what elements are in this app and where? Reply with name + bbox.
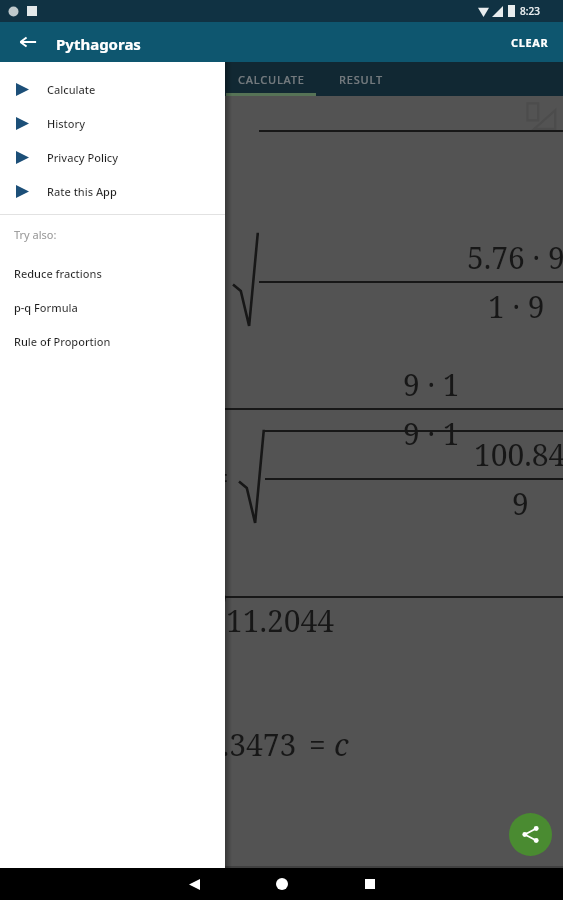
staticText: = <box>212 457 229 498</box>
staticText: Calculate <box>47 82 96 97</box>
staticText: 9 <box>512 483 529 524</box>
staticText: 11.2044 <box>226 600 335 641</box>
staticText: Privacy Policy <box>47 150 119 165</box>
button[interactable]: RESULT <box>316 62 406 96</box>
button[interactable]: CALCULATE <box>226 62 316 96</box>
staticText: p-q Formula <box>14 300 78 315</box>
staticText: Rate this App <box>47 184 117 199</box>
button[interactable]: History <box>0 106 225 140</box>
staticText: 9 · 1 <box>403 413 460 454</box>
staticText: 8:23 <box>520 4 540 18</box>
button[interactable]: Rate this App <box>0 174 225 208</box>
staticText: Reduce fractions <box>14 266 102 281</box>
button[interactable]: Share <box>509 813 552 856</box>
staticText: RESULT <box>339 72 383 87</box>
button[interactable]: Home <box>258 868 306 900</box>
staticText: 5.76 · 9 <box>467 237 563 278</box>
button[interactable]: Reduce fractions <box>0 256 225 290</box>
button[interactable]: Recents <box>346 868 394 900</box>
button[interactable]: Back <box>8 22 48 62</box>
staticText: 3.3473 <box>205 724 297 765</box>
staticText: CLEAR <box>511 35 549 50</box>
button[interactable]: Calculate <box>0 72 225 106</box>
staticText: 9 · 1 <box>403 364 460 405</box>
staticText: History <box>47 116 85 131</box>
button[interactable]: Privacy Policy <box>0 140 225 174</box>
staticText: Try also: <box>14 227 57 242</box>
button[interactable]: Back <box>170 868 218 900</box>
button[interactable]: Rule of Proportion <box>0 324 225 358</box>
button[interactable]: p-q Formula <box>0 290 225 324</box>
staticText: = <box>309 724 334 765</box>
staticText: Pythagoras <box>56 34 141 54</box>
staticText: 100.84 <box>474 434 563 475</box>
staticText: CALCULATE <box>238 72 305 87</box>
staticText: Rule of Proportion <box>14 334 111 349</box>
staticText: c <box>334 724 349 765</box>
staticText: = <box>210 259 227 300</box>
staticText: 1 · 9 <box>488 286 545 327</box>
button[interactable]: CLEAR <box>497 22 563 62</box>
